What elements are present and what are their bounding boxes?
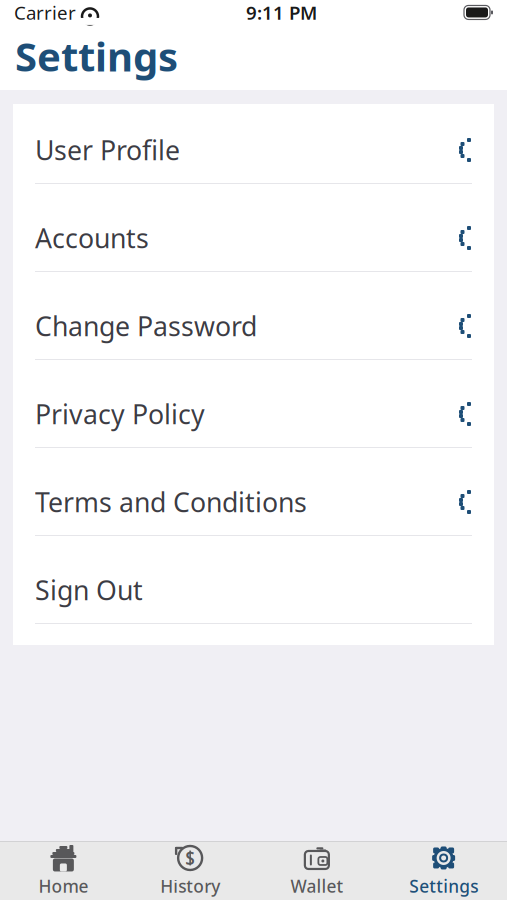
staticText: Carrier bbox=[14, 0, 76, 25]
staticText: Settings bbox=[15, 29, 178, 82]
staticText: Accounts bbox=[35, 220, 149, 256]
button[interactable]: Accounts bbox=[13, 205, 494, 293]
button[interactable]: S bbox=[127, 842, 254, 900]
button[interactable]: Privacy Policy bbox=[13, 381, 494, 469]
button[interactable]: User Profile bbox=[13, 117, 494, 205]
button[interactable]: Sign Out bbox=[13, 557, 494, 645]
staticText: Wallet bbox=[290, 874, 343, 897]
staticText: Terms and Conditions bbox=[35, 484, 307, 520]
staticText: 9:11 PM bbox=[246, 0, 317, 25]
button[interactable]: Change Password bbox=[13, 293, 494, 381]
button[interactable]: Wallet bbox=[253, 842, 380, 900]
staticText: Home bbox=[38, 874, 88, 897]
staticText: User Profile bbox=[35, 132, 180, 168]
button[interactable]: Terms and Conditions bbox=[13, 469, 494, 557]
staticText: History bbox=[160, 874, 220, 897]
staticText: S bbox=[185, 846, 195, 869]
staticText: Change Password bbox=[35, 308, 257, 344]
staticText: Sign Out bbox=[35, 572, 143, 608]
staticText: Settings bbox=[409, 874, 478, 897]
button[interactable]: Home bbox=[0, 842, 127, 900]
staticText: Privacy Policy bbox=[35, 396, 205, 432]
button[interactable]: Settings bbox=[380, 842, 507, 900]
